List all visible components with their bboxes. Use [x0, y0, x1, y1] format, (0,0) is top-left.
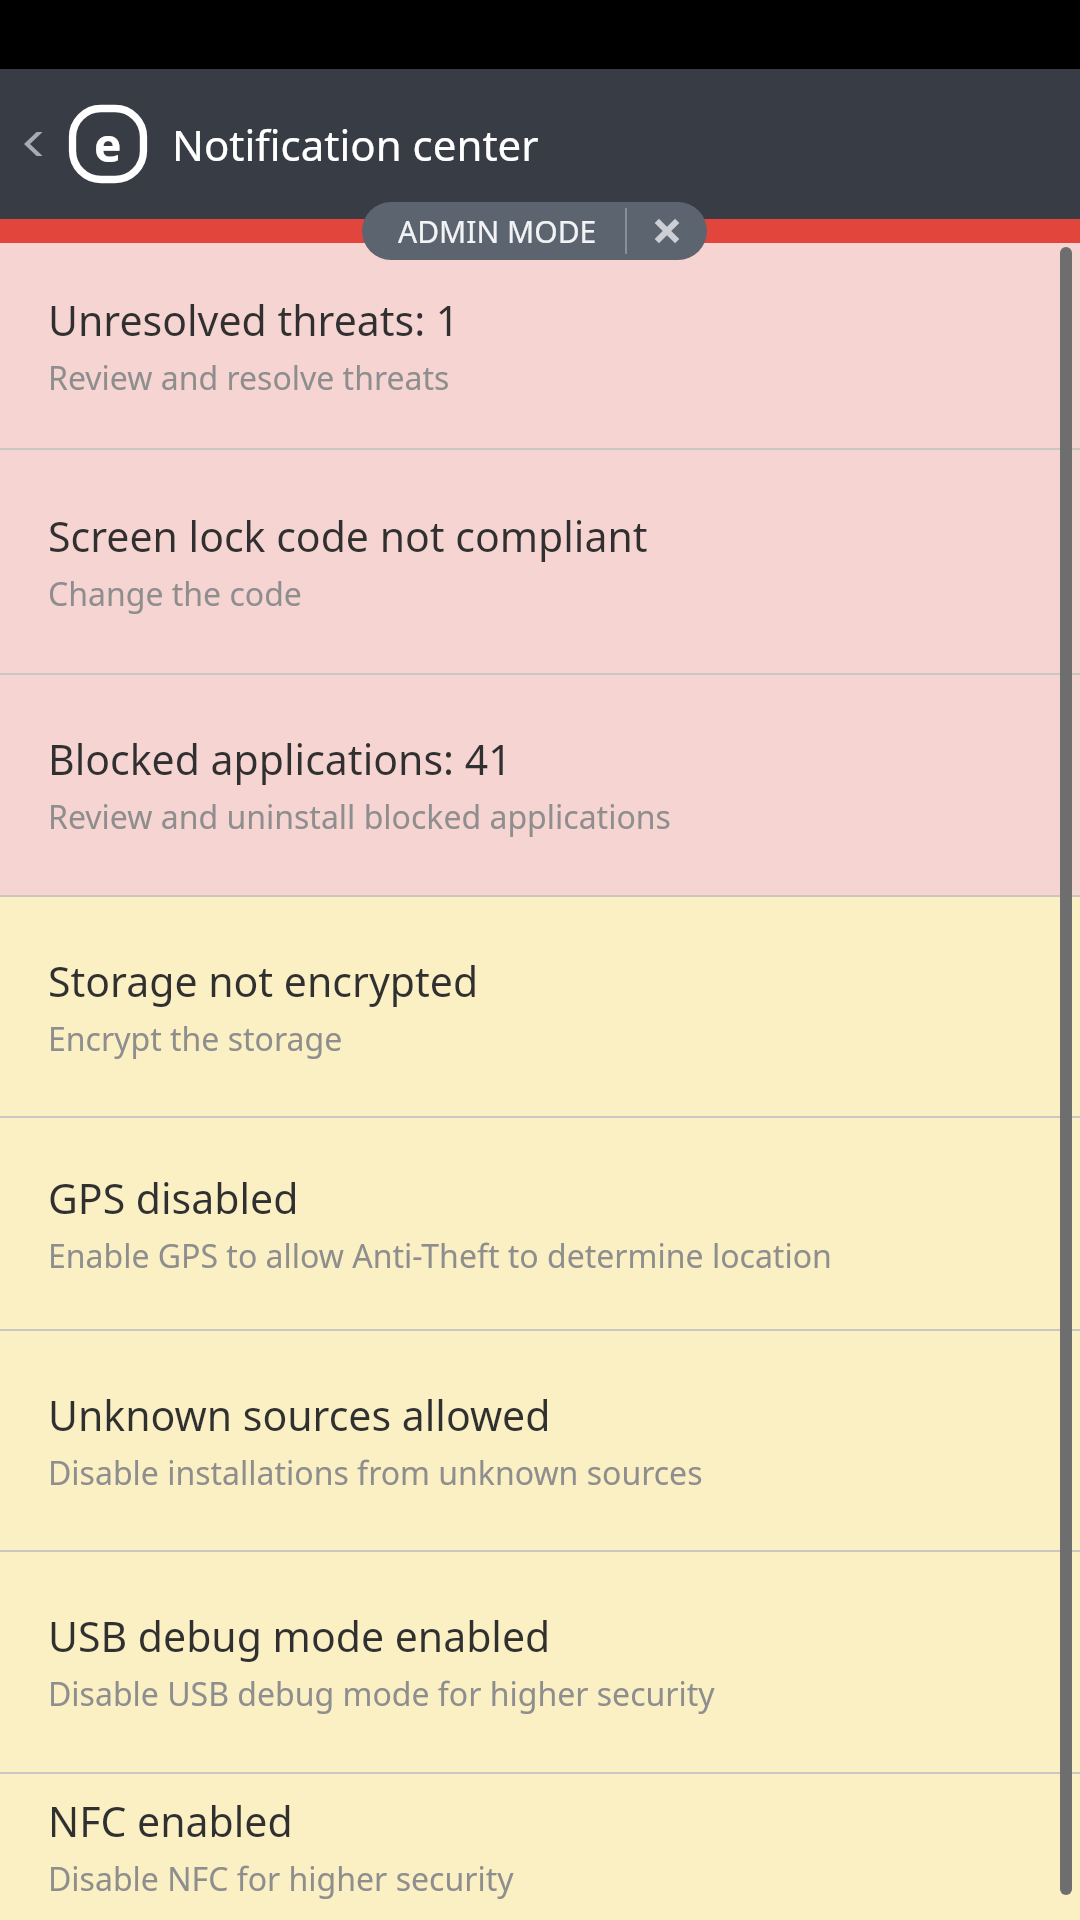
staticText: Screen lock code not compliant — [48, 508, 648, 564]
staticText: Enable GPS to allow Anti-Theft to determ… — [48, 1234, 832, 1278]
staticText: NFC enabled — [48, 1793, 293, 1849]
staticText: Review and uninstall blocked application… — [48, 795, 671, 839]
button[interactable]: NFC enabled — [0, 1774, 1080, 1920]
staticText: Disable installations from unknown sourc… — [48, 1451, 703, 1495]
staticText: e — [94, 113, 122, 176]
staticText: Unknown sources allowed — [48, 1387, 551, 1443]
button[interactable]: Unknown sources allowed — [0, 1331, 1080, 1550]
staticText: Disable USB debug mode for higher securi… — [48, 1672, 715, 1716]
staticText: Change the code — [48, 572, 302, 616]
staticText: Notification center — [172, 116, 539, 173]
staticText: USB debug mode enabled — [48, 1608, 551, 1664]
staticText: Blocked applications: 41 — [48, 731, 512, 787]
staticText: Disable NFC for higher security — [48, 1857, 514, 1901]
button[interactable]: GPS disabled — [0, 1118, 1080, 1329]
button[interactable]: Storage not encrypted — [0, 897, 1080, 1116]
button[interactable]: USB debug mode enabled — [0, 1552, 1080, 1772]
button[interactable]: Blocked applications: 41 — [0, 675, 1080, 895]
button[interactable]: Unresolved threats: 1 — [0, 243, 1080, 448]
staticText: Unresolved threats: 1 — [48, 292, 460, 348]
button[interactable]: Screen lock code not compliant — [0, 450, 1080, 673]
staticText: Storage not encrypted — [48, 953, 479, 1009]
button[interactable]: Exit admin mode — [627, 202, 707, 260]
staticText: GPS disabled — [48, 1170, 299, 1226]
staticText: ADMIN MODE — [398, 211, 597, 252]
button[interactable]: ADMIN MODE — [362, 202, 625, 260]
staticText: Review and resolve threats — [48, 356, 450, 400]
button[interactable]: ESET — [62, 98, 154, 190]
staticText: Encrypt the storage — [48, 1017, 343, 1061]
button[interactable]: Back — [10, 118, 62, 170]
